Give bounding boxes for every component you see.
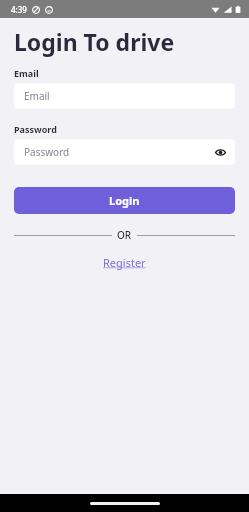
staticText: Email bbox=[24, 89, 50, 103]
staticText: Login To drive bbox=[14, 26, 175, 57]
staticText: OR bbox=[117, 228, 132, 242]
button[interactable]: Password bbox=[14, 139, 235, 165]
button[interactable]: Register bbox=[99, 253, 150, 272]
staticText: Password bbox=[24, 145, 70, 159]
button[interactable]: Email bbox=[14, 83, 235, 109]
staticText: Login bbox=[109, 193, 140, 208]
staticText: 4:39 bbox=[11, 4, 27, 15]
button[interactable]: Login bbox=[14, 187, 235, 214]
button[interactable]: Show password bbox=[213, 145, 227, 159]
staticText: Password bbox=[14, 123, 57, 135]
staticText: Email bbox=[14, 67, 39, 79]
staticText: Register bbox=[103, 255, 146, 270]
